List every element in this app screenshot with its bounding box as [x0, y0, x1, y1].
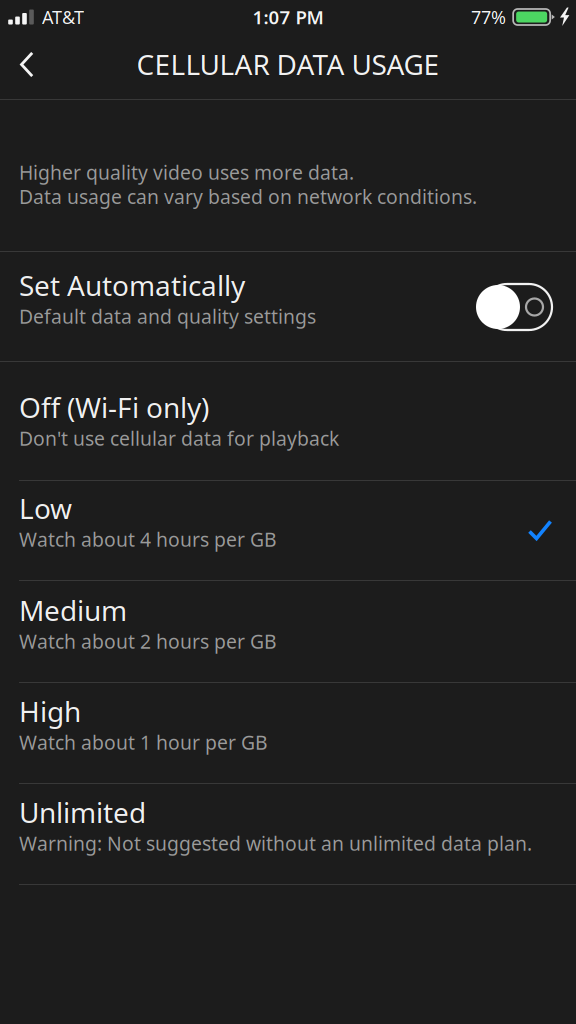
staticText: 77% — [471, 5, 506, 29]
staticText: CELLULAR DATA USAGE — [136, 45, 439, 83]
button[interactable]: Unlimited — [0, 784, 576, 884]
staticText: Off (Wi-Fi only) — [19, 388, 209, 426]
staticText: Unlimited — [19, 793, 146, 831]
staticText: 1:07 PM — [252, 4, 323, 30]
staticText: Low — [19, 489, 72, 527]
button[interactable]: Medium — [0, 581, 576, 682]
button[interactable]: High — [0, 683, 576, 783]
staticText: Don't use cellular data for playback — [19, 425, 339, 451]
staticText: Warning: Not suggested without an unlimi… — [19, 830, 532, 856]
button[interactable]: Set Automatically — [0, 252, 576, 361]
staticText: Default data and quality settings — [19, 303, 316, 329]
staticText: AT&T — [42, 5, 84, 29]
staticText: Medium — [19, 591, 127, 629]
staticText: Higher quality video uses more data. — [19, 159, 354, 185]
button[interactable]: Low — [0, 481, 576, 580]
button[interactable]: Off (Wi-Fi only) — [0, 362, 576, 480]
staticText: Set Automatically — [19, 266, 245, 304]
staticText: High — [19, 692, 81, 730]
staticText: Data usage can vary based on network con… — [19, 183, 477, 210]
staticText: Watch about 1 hour per GB — [19, 729, 268, 755]
button[interactable]: Back — [0, 34, 54, 99]
staticText: Watch about 2 hours per GB — [19, 628, 277, 654]
staticText: Watch about 4 hours per GB — [19, 526, 277, 552]
